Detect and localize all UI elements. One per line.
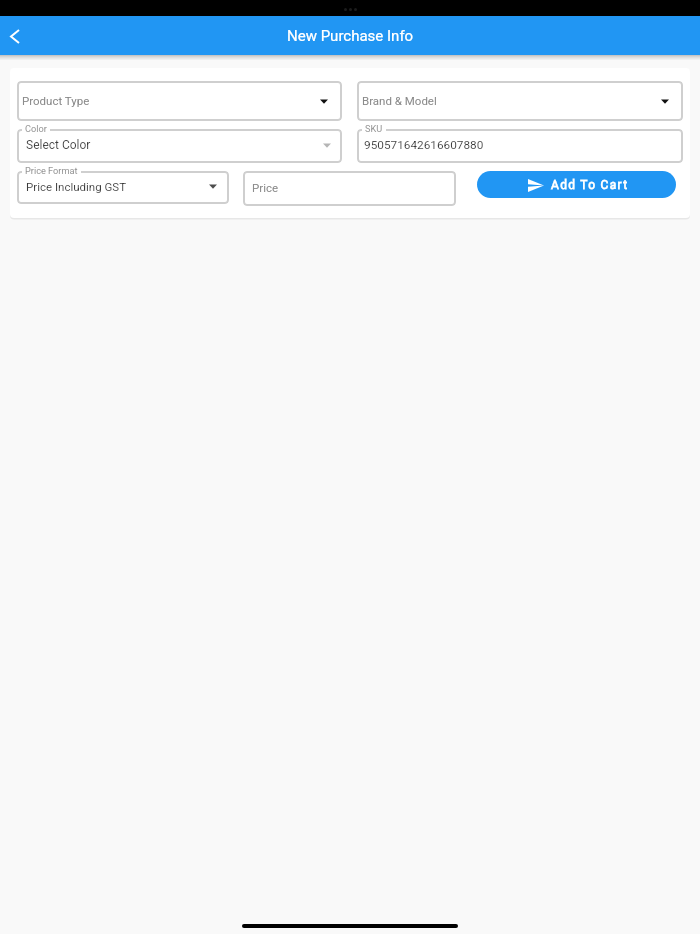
staticText: Brand & Model [362, 94, 437, 107]
button[interactable]: Back [0, 17, 30, 55]
button[interactable]: Brand & Model [357, 81, 683, 121]
staticText: Price Including GST [26, 180, 127, 193]
staticText: Price Format [25, 165, 78, 176]
button[interactable]: Price [243, 171, 456, 206]
button[interactable]: Select Color [17, 129, 342, 163]
button[interactable]: Price Including GST [17, 171, 229, 204]
staticText: SKU [365, 123, 383, 134]
staticText: 950571642616607880 [364, 138, 484, 152]
staticText: Color [25, 123, 47, 134]
staticText: Product Type [22, 94, 90, 107]
staticText: Select Color [26, 138, 91, 152]
button[interactable]: Product Type [17, 81, 342, 121]
staticText: Add To Cart [551, 178, 629, 192]
staticText: Price [252, 181, 279, 194]
button[interactable]: Add To Cart [477, 171, 676, 198]
staticText: New Purchase Info [287, 27, 414, 45]
button[interactable]: 950571642616607880 [357, 129, 683, 163]
